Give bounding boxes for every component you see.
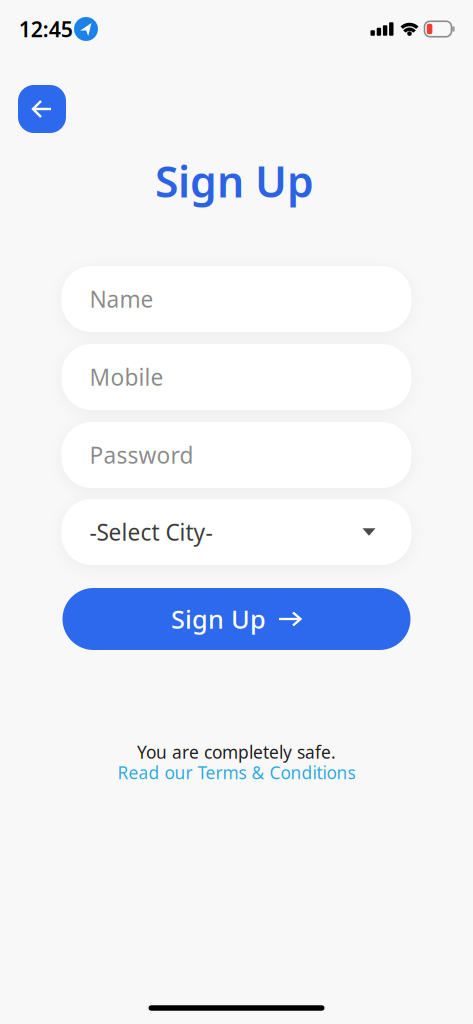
staticText: 12:45	[19, 15, 73, 43]
button[interactable]: -Select City-	[61, 499, 411, 565]
staticText: Mobile	[89, 362, 163, 392]
button[interactable]: Back	[18, 85, 66, 133]
button[interactable]: Read our Terms & Conditions	[117, 761, 355, 784]
button[interactable]: Name	[61, 266, 411, 332]
staticText: Read our Terms & Conditions	[117, 761, 355, 784]
button[interactable]: Mobile	[61, 344, 411, 410]
button[interactable]: Sign Up	[62, 588, 410, 650]
staticText: -Select City-	[89, 517, 212, 547]
button[interactable]: Password	[61, 422, 411, 488]
staticText: You are completely safe.	[137, 740, 336, 763]
staticText: Sign Up	[171, 602, 266, 636]
staticText: Password	[89, 440, 193, 470]
staticText: Name	[89, 284, 153, 314]
staticText: Sign Up	[155, 153, 314, 209]
